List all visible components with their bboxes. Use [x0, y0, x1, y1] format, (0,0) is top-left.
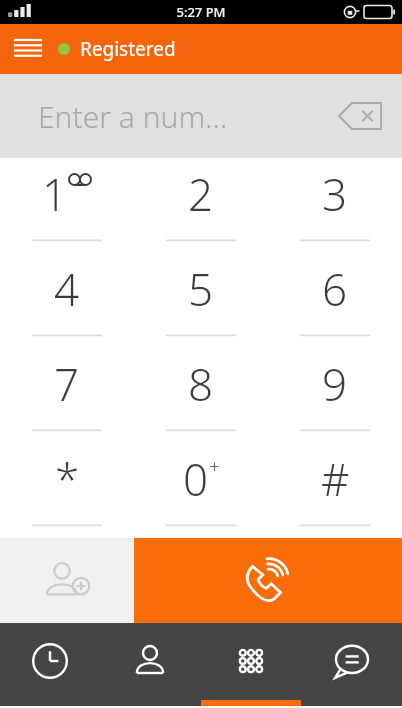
staticText: 9 — [322, 354, 348, 414]
button[interactable]: Open navigation menu — [6, 27, 50, 71]
staticText: 7 — [54, 354, 80, 414]
staticText: + — [209, 453, 220, 479]
button[interactable]: Messages — [301, 623, 402, 706]
button[interactable]: 0 — [134, 443, 268, 538]
button[interactable]: 5 — [134, 253, 268, 348]
staticText: # — [321, 449, 350, 509]
staticText: 8 — [188, 354, 214, 414]
button[interactable]: Call — [134, 538, 402, 623]
button[interactable]: 1 — [0, 158, 134, 253]
button[interactable]: Dialpad — [200, 623, 301, 706]
button[interactable]: 8 — [134, 348, 268, 443]
staticText: Registered — [80, 36, 176, 62]
staticText: 5 — [188, 259, 214, 319]
button[interactable]: 2 — [134, 158, 268, 253]
staticText: 4 — [54, 259, 80, 319]
button[interactable]: 9 — [268, 348, 402, 443]
staticText: 5:27 PM — [176, 3, 226, 21]
staticText: 0 — [183, 449, 209, 509]
button[interactable]: 3 — [268, 158, 402, 253]
button[interactable]: 6 — [268, 253, 402, 348]
button[interactable]: Recent calls — [0, 623, 100, 706]
staticText: Enter a num… — [38, 96, 228, 137]
button[interactable]: 4 — [0, 253, 134, 348]
staticText: 3 — [322, 164, 348, 224]
staticText: * — [55, 449, 80, 509]
staticText: 2 — [188, 164, 214, 224]
staticText: 6 — [322, 259, 348, 319]
button[interactable]: * — [0, 443, 134, 538]
button[interactable]: Backspace — [332, 94, 388, 138]
button[interactable]: 7 — [0, 348, 134, 443]
staticText: 1 — [42, 164, 68, 224]
button[interactable]: # — [268, 443, 402, 538]
button[interactable]: Contacts — [100, 623, 200, 706]
button[interactable]: Add contact — [0, 538, 134, 623]
